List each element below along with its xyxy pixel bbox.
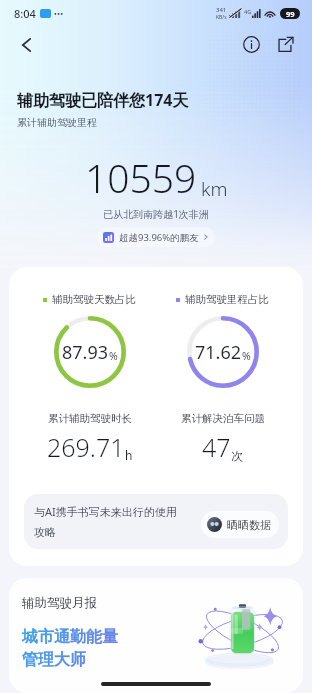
staticText: 8:04 (14, 6, 36, 21)
staticText: 269.71 (47, 430, 125, 464)
staticText: 累计解决泊车问题 (181, 412, 265, 425)
staticText: % (109, 349, 118, 363)
staticText: 99 (286, 9, 295, 19)
staticText: 87.93 (62, 340, 109, 365)
staticText: 辅助驾驶天数占比 (52, 293, 136, 306)
button[interactable]: 辅助驾驶月报 (9, 578, 303, 693)
staticText: 71.62 (195, 340, 242, 365)
button[interactable]: 晒晒数据 (201, 511, 279, 538)
staticText: % (242, 349, 251, 363)
button[interactable]: Back (9, 29, 43, 60)
staticText: 超越93.96%的鹏友 (119, 231, 199, 244)
staticText: 晒晒数据 (227, 518, 271, 532)
button[interactable]: 超越93.96%的鹏友 (97, 227, 215, 247)
button[interactable]: Share (269, 28, 301, 60)
staticText: 辅助驾驶里程占比 (185, 293, 269, 306)
staticText: KB/s (216, 14, 227, 21)
button[interactable]: Info (235, 28, 267, 60)
staticText: km (201, 176, 228, 202)
staticText: 10559 (85, 151, 197, 204)
staticText: 与AI携手书写未来出行的使用 攻略 (34, 504, 195, 539)
staticText: h (125, 447, 133, 463)
staticText: 辅助驾驶已陪伴您174天 (17, 89, 189, 111)
staticText: 累计辅助驾驶里程 (17, 116, 97, 129)
staticText: 4G (244, 8, 252, 15)
staticText: 47 (202, 430, 231, 464)
staticText: 辅助驾驶月报 (22, 595, 97, 611)
staticText: 已从北到南跨越1次非洲 (0, 207, 312, 221)
staticText: 累计辅助驾驶时长 (48, 412, 132, 425)
staticText: 城市通勤能量 管理大师 (22, 627, 118, 670)
staticText: 次 (231, 448, 243, 463)
staticText: 341 (216, 6, 227, 14)
